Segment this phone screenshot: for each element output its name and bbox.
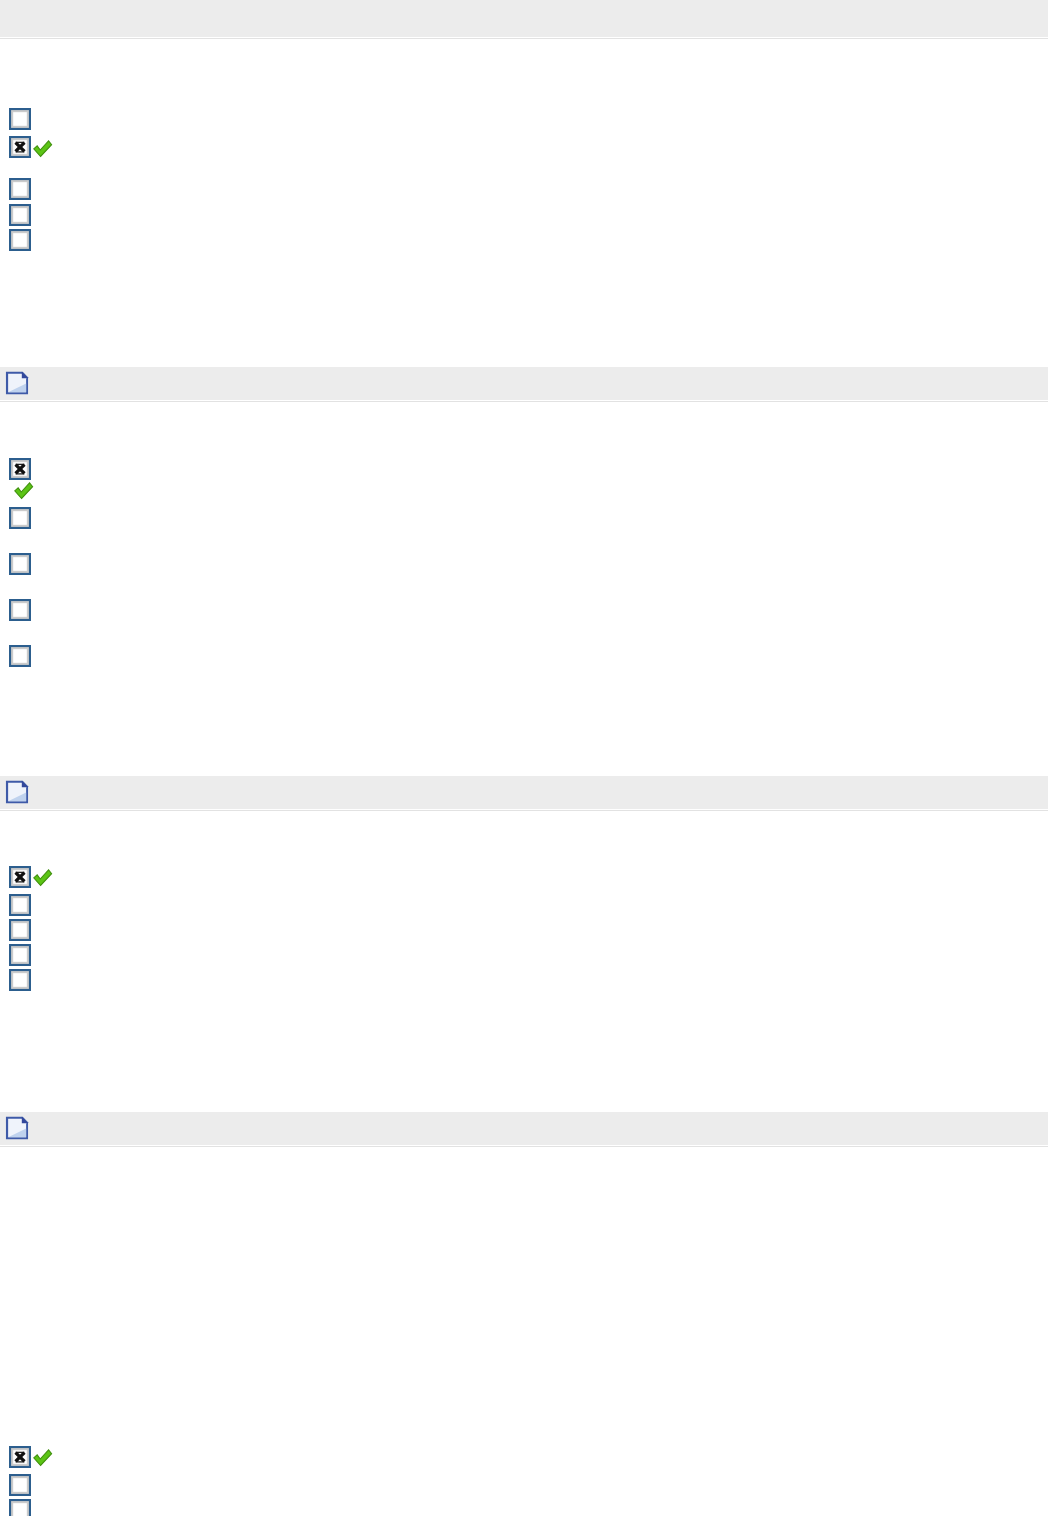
button[interactable]: Checked option (9, 1446, 31, 1468)
other: Validated (33, 139, 52, 158)
button[interactable]: Option (9, 108, 31, 130)
button[interactable]: Option (9, 599, 31, 621)
button[interactable]: Checked option (9, 866, 31, 888)
button[interactable]: Option (9, 645, 31, 667)
other: Validated (33, 1448, 52, 1467)
button[interactable]: Checked option (9, 136, 31, 158)
button[interactable]: Option (9, 507, 31, 529)
other: Document (5, 1116, 29, 1140)
button[interactable]: Checked option (9, 458, 31, 480)
button[interactable]: Option (9, 919, 31, 941)
other: Validated (14, 481, 33, 500)
button[interactable]: Option (9, 1499, 31, 1516)
button[interactable]: Option (9, 1474, 31, 1496)
button[interactable]: Option (9, 894, 31, 916)
button[interactable]: Document (0, 1112, 1048, 1145)
button[interactable]: Document (0, 776, 1048, 809)
other: Validated (33, 868, 52, 887)
other: Document (5, 780, 29, 804)
other: Document (5, 371, 29, 395)
button[interactable]: Option (9, 178, 31, 200)
button[interactable]: Option (9, 553, 31, 575)
button[interactable]: Option (9, 944, 31, 966)
button[interactable]: Option (9, 229, 31, 251)
button[interactable]: Option (9, 204, 31, 226)
button[interactable]: Option (9, 969, 31, 991)
button[interactable]: Document (0, 367, 1048, 400)
